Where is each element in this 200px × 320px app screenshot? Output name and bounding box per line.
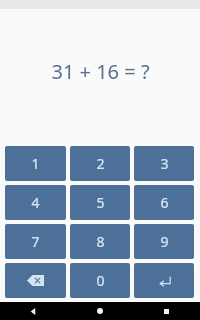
staticText: 7 [31,232,40,251]
staticText: 8 [96,232,105,251]
button[interactable]: 7 [5,224,66,259]
staticText: 31 + 16 = ? [51,58,150,85]
button[interactable]: 3 [134,146,194,181]
button[interactable]: Recent apps [133,302,200,320]
button[interactable]: 6 [134,185,194,220]
button[interactable]: Home [66,302,133,320]
button[interactable]: 1 [5,146,66,181]
button[interactable]: 9 [134,224,194,259]
staticText: 0 [96,271,105,290]
button[interactable]: 8 [70,224,130,259]
staticText: 3 [160,154,169,173]
staticText: 9 [160,232,169,251]
button[interactable]: Enter [134,263,194,298]
button[interactable]: Back [0,302,66,320]
button[interactable]: 5 [70,185,130,220]
staticText: 1 [31,154,40,173]
button[interactable]: 4 [5,185,66,220]
staticText: 2 [96,154,105,173]
button[interactable]: 0 [70,263,130,298]
button[interactable]: 2 [70,146,130,181]
button[interactable]: Backspace [5,263,66,298]
staticText: 4 [31,193,40,212]
staticText: 6 [160,193,169,212]
staticText: 5 [96,193,105,212]
